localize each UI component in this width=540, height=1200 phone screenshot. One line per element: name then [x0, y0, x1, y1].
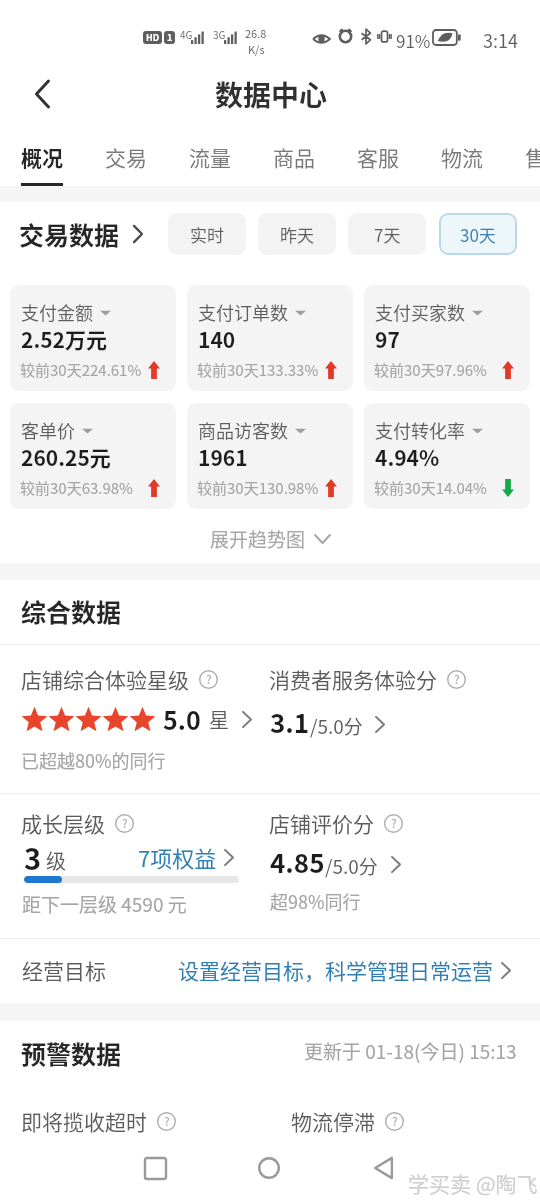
button[interactable]: 概况 — [11, 140, 73, 188]
staticText: 7项权益 — [138, 841, 217, 873]
staticText: 店铺评价分 — [269, 808, 374, 838]
staticText: 展开趋势图 — [210, 525, 306, 553]
staticText: HD — [146, 31, 160, 44]
staticText: 较前30天63.98% — [20, 477, 133, 499]
staticText: ? — [391, 814, 397, 831]
button[interactable]: 店铺综合体验星级 — [21, 664, 218, 694]
staticText: 物流停滞 — [291, 1106, 375, 1136]
button[interactable]: Home — [247, 1146, 291, 1190]
staticText: 流量 — [189, 142, 231, 172]
staticText: 商品 — [273, 142, 315, 172]
staticText: 成长层级 — [21, 808, 105, 838]
staticText: 7天 — [374, 222, 401, 247]
staticText: 售 — [525, 142, 540, 172]
staticText: ? — [454, 670, 460, 687]
button[interactable]: Recent apps — [133, 1146, 177, 1190]
button[interactable]: 交易 — [95, 140, 157, 188]
staticText: ? — [392, 1112, 398, 1129]
staticText: 260.25元 — [21, 442, 111, 472]
staticText: 较前30天97.96% — [374, 359, 487, 381]
staticText: 数据中心 — [215, 74, 328, 115]
button[interactable]: 商品 — [263, 140, 325, 188]
staticText: 综合数据 — [21, 593, 122, 629]
staticText: 1961 — [198, 442, 248, 472]
staticText: 支付转化率 — [375, 417, 465, 443]
staticText: 距下一层级 4590 元 — [22, 890, 187, 918]
button[interactable]: 昨天 — [258, 213, 336, 255]
staticText: 交易 — [105, 142, 147, 172]
staticText: 级 — [46, 846, 66, 875]
button[interactable]: 客服 — [347, 140, 409, 188]
staticText: 3G — [213, 27, 226, 41]
staticText: 支付订单数 — [198, 299, 288, 325]
staticText: 4.85 — [270, 843, 325, 881]
staticText: 4G — [180, 27, 193, 41]
button[interactable]: 售 — [515, 140, 540, 188]
staticText: 2.52万元 — [21, 324, 107, 354]
button[interactable]: 成长层级 — [21, 808, 134, 838]
staticText: 较前30天133.33% — [197, 359, 319, 381]
staticText: 较前30天14.04% — [374, 477, 487, 499]
button[interactable]: 商品访客数 — [187, 403, 353, 509]
button[interactable]: 店铺评价分 — [269, 808, 403, 838]
staticText: 消费者服务体验分 — [269, 664, 437, 694]
staticText: 26.8 — [245, 25, 267, 41]
button[interactable]: 30天 — [439, 213, 517, 255]
button[interactable]: 支付金额 — [10, 285, 176, 391]
button[interactable]: 7天 — [348, 213, 426, 255]
staticText: 4.94% — [375, 442, 440, 472]
button[interactable]: 支付订单数 — [187, 285, 353, 391]
staticText: 交易数据 — [19, 216, 120, 252]
button[interactable]: 支付转化率 — [364, 403, 530, 509]
staticText: 预警数据 — [21, 1035, 122, 1071]
staticText: 更新于 01-18(今日) 15:13 — [304, 1037, 517, 1065]
staticText: 91% — [396, 28, 431, 53]
staticText: 3:14 — [483, 27, 518, 53]
staticText: 支付金额 — [21, 299, 93, 325]
button[interactable]: 经营目标 — [0, 945, 540, 995]
button[interactable]: Back — [361, 1146, 405, 1190]
staticText: /5.0分 — [310, 712, 363, 740]
button[interactable]: 消费者服务体验分 — [269, 664, 466, 694]
staticText: 实时 — [190, 222, 224, 247]
staticText: ? — [206, 670, 212, 687]
button[interactable]: Back — [19, 71, 65, 117]
button[interactable]: 客单价 — [10, 403, 176, 509]
staticText: 客单价 — [21, 417, 75, 443]
staticText: 超98%同行 — [270, 888, 361, 914]
staticText: 5.0 — [163, 701, 201, 737]
staticText: 3 — [24, 836, 42, 878]
button[interactable]: 展开趋势图 — [206, 521, 335, 557]
button[interactable]: 5.0 — [21, 699, 252, 739]
staticText: K/s — [248, 41, 265, 57]
button[interactable]: 交易数据 — [16, 213, 146, 255]
staticText: 97 — [375, 324, 400, 354]
button[interactable]: 4.85 — [270, 843, 378, 881]
button[interactable]: 3.1 — [270, 703, 363, 741]
staticText: 已超越80%的同行 — [21, 747, 166, 773]
staticText: 140 — [198, 324, 236, 354]
staticText: 物流 — [441, 142, 483, 172]
staticText: ? — [164, 1112, 170, 1129]
button[interactable]: 流量 — [179, 140, 241, 188]
staticText: 1 — [167, 31, 173, 44]
staticText: ? — [122, 814, 128, 831]
staticText: 学买卖 @陶飞 — [408, 1168, 538, 1198]
staticText: 即将揽收超时 — [21, 1106, 147, 1136]
button[interactable]: 物流停滞 — [291, 1106, 404, 1136]
button[interactable]: 7项权益 — [138, 841, 234, 873]
button[interactable]: 即将揽收超时 — [21, 1106, 176, 1136]
button[interactable]: 物流 — [431, 140, 493, 188]
button[interactable]: 实时 — [168, 213, 246, 255]
staticText: 较前30天224.61% — [20, 359, 142, 381]
staticText: 经营目标 — [22, 955, 106, 985]
staticText: 3.1 — [270, 703, 310, 741]
staticText: 支付买家数 — [375, 299, 465, 325]
staticText: 商品访客数 — [198, 417, 288, 443]
staticText: 较前30天130.98% — [197, 477, 319, 499]
staticText: 客服 — [357, 142, 399, 172]
staticText: /5.0分 — [325, 852, 378, 880]
staticText: 30天 — [460, 222, 496, 247]
staticText: 昨天 — [280, 222, 314, 247]
button[interactable]: 支付买家数 — [364, 285, 530, 391]
